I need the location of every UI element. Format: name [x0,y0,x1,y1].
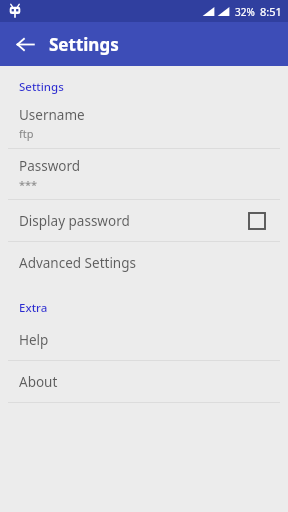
button[interactable]: Advanced Settings [0,242,288,283]
staticText: About [19,373,58,391]
button[interactable]: Back [9,28,41,60]
button[interactable]: Password [0,149,288,199]
staticText: Help [19,331,49,349]
staticText: Username [19,106,85,124]
staticText: ftp [19,126,34,141]
button[interactable]: About [0,361,288,402]
staticText: Display password [19,212,249,230]
button[interactable]: Help [0,319,288,360]
staticText: Advanced Settings [19,254,136,272]
button[interactable]: Display password [0,200,288,241]
staticText: 8:51 [260,4,282,19]
staticText: Settings [19,79,64,95]
staticText: 32% [235,5,255,19]
staticText: Password [19,157,81,175]
staticText: Settings [49,33,119,56]
staticText: *** [19,177,38,192]
button[interactable]: Username [0,98,288,148]
staticText: Extra [19,300,48,316]
